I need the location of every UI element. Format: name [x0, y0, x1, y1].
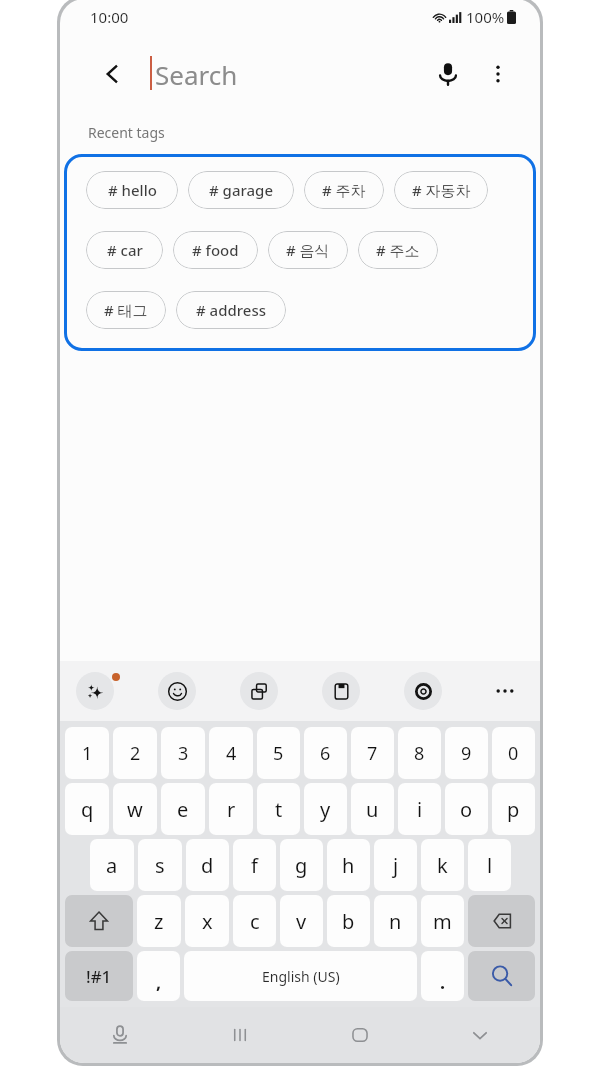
staticText: , — [156, 970, 162, 995]
button[interactable]: a — [90, 839, 134, 891]
staticText: i — [417, 796, 423, 823]
button[interactable]: 6 — [304, 727, 347, 779]
button[interactable]: 7 — [351, 727, 394, 779]
staticText: s — [155, 852, 165, 879]
button[interactable]: # hello — [86, 171, 178, 209]
button[interactable]: 9 — [445, 727, 488, 779]
staticText: # 주차 — [322, 180, 366, 200]
button[interactable]: l — [468, 839, 511, 891]
staticText: . — [440, 970, 446, 995]
staticText: 100% — [466, 7, 505, 27]
staticText: # 태그 — [104, 300, 148, 320]
staticText: n — [389, 908, 402, 935]
button[interactable]: Hide keyboard — [420, 1007, 540, 1063]
staticText: p — [507, 796, 520, 823]
button[interactable]: Backspace — [468, 895, 535, 947]
button[interactable]: Back — [96, 57, 130, 91]
button[interactable]: m — [421, 895, 464, 947]
button[interactable]: u — [351, 783, 394, 835]
staticText: 4 — [226, 741, 237, 766]
button[interactable]: Translate — [240, 672, 278, 710]
staticText: English (US) — [262, 967, 340, 986]
button[interactable]: s — [138, 839, 182, 891]
button[interactable]: Home — [300, 1007, 420, 1063]
staticText: 5 — [273, 741, 284, 766]
staticText: 7 — [367, 741, 378, 766]
button[interactable]: Recents — [180, 1007, 300, 1063]
staticText: 8 — [414, 741, 425, 766]
button[interactable]: 8 — [398, 727, 441, 779]
staticText: Recent tags — [88, 123, 165, 142]
button[interactable]: AI suggestions — [76, 672, 114, 710]
button[interactable]: Emoji — [158, 672, 196, 710]
button[interactable]: c — [233, 895, 276, 947]
button[interactable]: e — [161, 783, 205, 835]
button[interactable]: n — [374, 895, 417, 947]
button[interactable]: More keyboard options — [486, 672, 524, 710]
button[interactable]: x — [185, 895, 229, 947]
button[interactable]: # address — [176, 291, 286, 329]
button[interactable]: p — [492, 783, 535, 835]
staticText: b — [342, 908, 355, 935]
button[interactable]: 3 — [161, 727, 205, 779]
button[interactable]: # 주차 — [304, 171, 384, 209]
button[interactable]: q — [65, 783, 109, 835]
staticText: 6 — [320, 741, 331, 766]
button[interactable]: 1 — [65, 727, 109, 779]
staticText: u — [366, 796, 379, 823]
button[interactable]: Settings — [404, 672, 442, 710]
staticText: !#1 — [86, 965, 112, 988]
button[interactable]: w — [113, 783, 157, 835]
staticText: 10:00 — [90, 7, 129, 27]
button[interactable]: 4 — [209, 727, 253, 779]
button[interactable]: # food — [173, 231, 258, 269]
button[interactable]: Voice search — [428, 54, 468, 94]
button[interactable]: # 자동차 — [394, 171, 488, 209]
button[interactable]: d — [186, 839, 229, 891]
staticText: 2 — [130, 741, 141, 766]
staticText: l — [487, 852, 493, 879]
button[interactable]: o — [445, 783, 488, 835]
button[interactable]: Clipboard — [322, 672, 360, 710]
button[interactable]: f — [233, 839, 276, 891]
staticText: e — [177, 796, 189, 823]
button[interactable]: y — [304, 783, 347, 835]
button[interactable]: Search — [468, 951, 535, 1001]
button[interactable]: # 태그 — [86, 291, 166, 329]
button[interactable]: z — [137, 895, 181, 947]
staticText: c — [250, 908, 260, 935]
button[interactable]: , — [137, 951, 180, 1001]
button[interactable]: 5 — [257, 727, 300, 779]
button[interactable]: j — [374, 839, 417, 891]
staticText: j — [393, 852, 399, 879]
staticText: d — [201, 852, 214, 879]
button[interactable]: # garage — [188, 171, 294, 209]
button[interactable]: Shift — [65, 895, 133, 947]
button[interactable]: Voice input — [60, 1007, 180, 1063]
button[interactable]: 2 — [113, 727, 157, 779]
staticText: 0 — [508, 741, 519, 766]
button[interactable]: # 주소 — [358, 231, 438, 269]
button[interactable]: v — [280, 895, 323, 947]
staticText: 3 — [178, 741, 189, 766]
button[interactable]: h — [327, 839, 370, 891]
button[interactable]: g — [280, 839, 323, 891]
staticText: z — [154, 908, 164, 935]
button[interactable]: i — [398, 783, 441, 835]
button[interactable]: English (US) — [184, 951, 417, 1001]
button[interactable]: . — [421, 951, 464, 1001]
staticText: q — [81, 796, 94, 823]
button[interactable]: t — [257, 783, 300, 835]
button[interactable]: # car — [86, 231, 163, 269]
button[interactable]: b — [327, 895, 370, 947]
button[interactable]: k — [421, 839, 464, 891]
button[interactable]: # 음식 — [268, 231, 348, 269]
staticText: v — [296, 908, 307, 935]
staticText: o — [460, 796, 473, 823]
button[interactable]: More options — [478, 54, 518, 94]
button[interactable]: !#1 — [65, 951, 133, 1001]
button[interactable]: 0 — [492, 727, 535, 779]
staticText: g — [295, 852, 308, 879]
button[interactable]: r — [209, 783, 253, 835]
staticText: 9 — [461, 741, 472, 766]
